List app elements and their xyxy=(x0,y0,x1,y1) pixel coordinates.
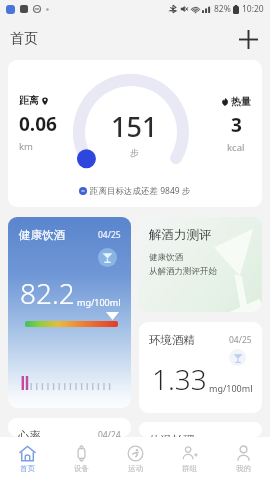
staticText: 运动 xyxy=(128,464,143,473)
staticText: km xyxy=(19,140,33,153)
staticText: 首页 xyxy=(20,464,35,473)
button[interactable]: Add xyxy=(236,27,260,51)
staticText: 82.2 xyxy=(20,274,75,312)
staticText: 健康饮酒 xyxy=(149,252,183,263)
staticText: 10:20 xyxy=(242,3,264,15)
button[interactable]: 环境酒精 xyxy=(139,322,262,413)
button[interactable]: 设备 xyxy=(54,445,108,473)
staticText: 3 xyxy=(231,112,242,138)
staticText: 首页 xyxy=(10,30,38,48)
button[interactable]: 体温拍理 xyxy=(139,422,262,437)
button[interactable]: 心率 xyxy=(8,418,131,437)
staticText: 04/24 xyxy=(98,429,121,437)
staticText: 解酒力测评 xyxy=(149,227,212,243)
staticText: 04/25 xyxy=(229,334,252,346)
staticText: 151 xyxy=(111,108,158,145)
staticText: 步 xyxy=(130,147,139,158)
staticText: 设备 xyxy=(74,464,89,473)
staticText: 1.33 xyxy=(152,360,207,398)
staticText: 82% xyxy=(214,3,231,15)
button[interactable]: 距离 xyxy=(8,60,262,207)
staticText: kcal xyxy=(227,141,245,154)
staticText: 从解酒力测评开始 xyxy=(149,266,217,277)
staticText: 距离 xyxy=(19,94,39,107)
staticText: 环境酒精 xyxy=(149,333,195,347)
button[interactable]: 运动 xyxy=(108,445,162,473)
staticText: 0.06 xyxy=(19,111,57,137)
staticText: mg/100ml xyxy=(209,382,253,394)
staticText: 我的 xyxy=(236,464,251,473)
staticText: mg/100ml xyxy=(77,296,121,308)
staticText: 体温拍理 xyxy=(149,433,195,437)
button[interactable]: 群组 xyxy=(162,445,216,473)
staticText: 健康饮酒 xyxy=(19,228,65,242)
staticText: 热量 xyxy=(231,95,251,108)
staticText: 群组 xyxy=(182,464,197,473)
staticText: 距离目标达成还差 9849 步 xyxy=(90,185,191,197)
staticText: 04/25 xyxy=(98,229,121,241)
staticText: 心率 xyxy=(18,429,41,437)
button[interactable]: 健康饮酒 xyxy=(8,217,131,408)
button[interactable]: 首页 xyxy=(0,445,54,473)
button[interactable]: 我的 xyxy=(216,445,270,473)
button[interactable]: 解酒力测评 xyxy=(139,217,262,312)
